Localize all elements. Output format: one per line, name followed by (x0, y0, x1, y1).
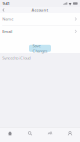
staticText: Account (31, 7, 48, 13)
staticText: 9:41 (2, 1, 9, 6)
button[interactable]: Back (0, 7, 7, 13)
button[interactable]: Search (20, 127, 40, 142)
button[interactable]: Activity (40, 127, 60, 142)
button[interactable]: Name (0, 13, 80, 25)
button[interactable]: Email (0, 25, 80, 37)
staticText: Save Changes (32, 43, 47, 54)
button[interactable]: Home (0, 127, 20, 142)
button[interactable]: Profile (60, 127, 80, 142)
staticText: Synced to iCloud (2, 55, 30, 60)
button[interactable]: Save Changes (29, 45, 51, 52)
staticText: Email (2, 29, 12, 34)
staticText: Name (2, 16, 13, 22)
